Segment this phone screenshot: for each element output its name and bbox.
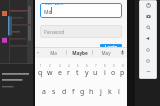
staticText: y xyxy=(85,68,89,78)
staticText: Password xyxy=(44,29,65,35)
staticText: s xyxy=(52,87,56,97)
button[interactable]: g xyxy=(78,81,87,103)
staticText: g xyxy=(80,87,85,97)
staticText: e xyxy=(58,68,62,78)
button[interactable]: Screenshot xyxy=(139,11,157,22)
staticText: o xyxy=(111,68,116,78)
button[interactable]: May xyxy=(93,47,118,58)
staticText: h xyxy=(89,87,94,97)
button[interactable]: l xyxy=(114,81,123,103)
button[interactable]: h xyxy=(87,81,96,103)
button[interactable]: Voice input xyxy=(118,47,127,58)
button[interactable]: Maybe xyxy=(67,47,92,58)
staticText: 5 xyxy=(77,64,79,68)
staticText: 8 xyxy=(104,64,106,68)
staticText: 6 xyxy=(86,64,88,68)
button[interactable]: a xyxy=(39,81,49,103)
button[interactable]: 9 xyxy=(109,60,118,81)
button[interactable]: Overview xyxy=(139,55,157,66)
button[interactable]: Volume xyxy=(139,33,157,44)
staticText: 7 xyxy=(95,64,97,68)
staticText: k xyxy=(108,87,112,97)
button[interactable]: Back xyxy=(139,66,157,77)
staticText: > xyxy=(37,50,40,55)
staticText: r xyxy=(67,68,70,78)
button[interactable]: Home xyxy=(139,44,157,55)
button[interactable]: 6 xyxy=(82,60,91,81)
staticText: 3 xyxy=(59,64,61,68)
staticText: 9 xyxy=(113,64,115,68)
button[interactable]: 1 xyxy=(35,60,45,81)
button[interactable]: Login xyxy=(100,44,122,47)
staticText: User Name xyxy=(45,3,64,6)
staticText: j xyxy=(100,87,102,97)
button[interactable]: Extended controls xyxy=(139,0,157,11)
staticText: May xyxy=(101,50,111,56)
staticText: 2 xyxy=(49,64,51,68)
button[interactable]: 2 xyxy=(45,60,55,81)
staticText: u xyxy=(93,68,98,78)
button[interactable]: s xyxy=(49,81,59,103)
button[interactable]: 7 xyxy=(91,60,100,81)
button[interactable]: j xyxy=(96,81,105,103)
staticText: i xyxy=(104,68,106,78)
staticText: t xyxy=(76,68,79,78)
button[interactable]: f xyxy=(69,81,78,103)
staticText: w xyxy=(47,68,53,78)
button[interactable]: Ma xyxy=(41,47,66,58)
staticText: a xyxy=(42,87,46,97)
staticText: 1 xyxy=(40,64,42,68)
button[interactable]: Md xyxy=(40,3,122,18)
button[interactable]: 5 xyxy=(73,60,82,81)
button[interactable]: d xyxy=(59,81,69,103)
button[interactable]: Zoom xyxy=(139,22,157,33)
staticText: q xyxy=(38,68,43,78)
button[interactable]: 3 xyxy=(55,60,64,81)
button[interactable]: Password xyxy=(40,25,122,38)
staticText: Maybe xyxy=(72,50,88,56)
staticText: Ma xyxy=(50,50,57,56)
staticText: p xyxy=(120,68,125,78)
button[interactable]: 0 xyxy=(118,60,127,81)
staticText: f xyxy=(72,87,75,97)
staticText: d xyxy=(62,87,67,97)
staticText: 0 xyxy=(122,64,124,68)
button[interactable]: 4 xyxy=(64,60,73,81)
staticText: 4 xyxy=(68,64,70,68)
staticText: Md xyxy=(44,9,52,16)
button[interactable]: 8 xyxy=(100,60,109,81)
staticText: l xyxy=(118,87,120,97)
button[interactable]: More suggestions xyxy=(35,47,41,58)
button[interactable]: k xyxy=(105,81,114,103)
staticText: Login xyxy=(105,44,117,47)
